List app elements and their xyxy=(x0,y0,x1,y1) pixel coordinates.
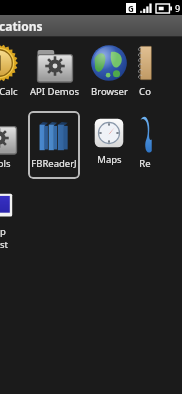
staticText: Contacts xyxy=(138,85,152,98)
button[interactable]: Sip enabled test xyxy=(0,187,24,255)
button[interactable]: AndCalc xyxy=(0,39,24,107)
staticText: G xyxy=(128,3,134,13)
button[interactable]: Contacts xyxy=(138,39,152,107)
staticText: FBReaderJ xyxy=(31,157,77,170)
staticText: cations xyxy=(0,18,43,34)
staticText: AndCalc xyxy=(0,85,18,98)
staticText: Recent xyxy=(138,157,152,170)
staticText: 9 xyxy=(175,2,181,14)
staticText: test xyxy=(0,238,8,251)
button[interactable]: API Demos xyxy=(28,39,80,107)
staticText: Browser xyxy=(91,85,128,98)
staticText: API Demos xyxy=(30,85,79,98)
button[interactable]: FBReaderJ xyxy=(28,111,80,179)
button[interactable]: Recent xyxy=(138,111,152,179)
button[interactable]: Maps xyxy=(84,111,134,179)
staticText: Sip enabled xyxy=(0,225,24,238)
button[interactable]: Browser xyxy=(84,39,134,107)
staticText: Tools xyxy=(0,157,11,170)
button[interactable]: Tools xyxy=(0,111,24,179)
staticText: Maps xyxy=(97,153,122,166)
